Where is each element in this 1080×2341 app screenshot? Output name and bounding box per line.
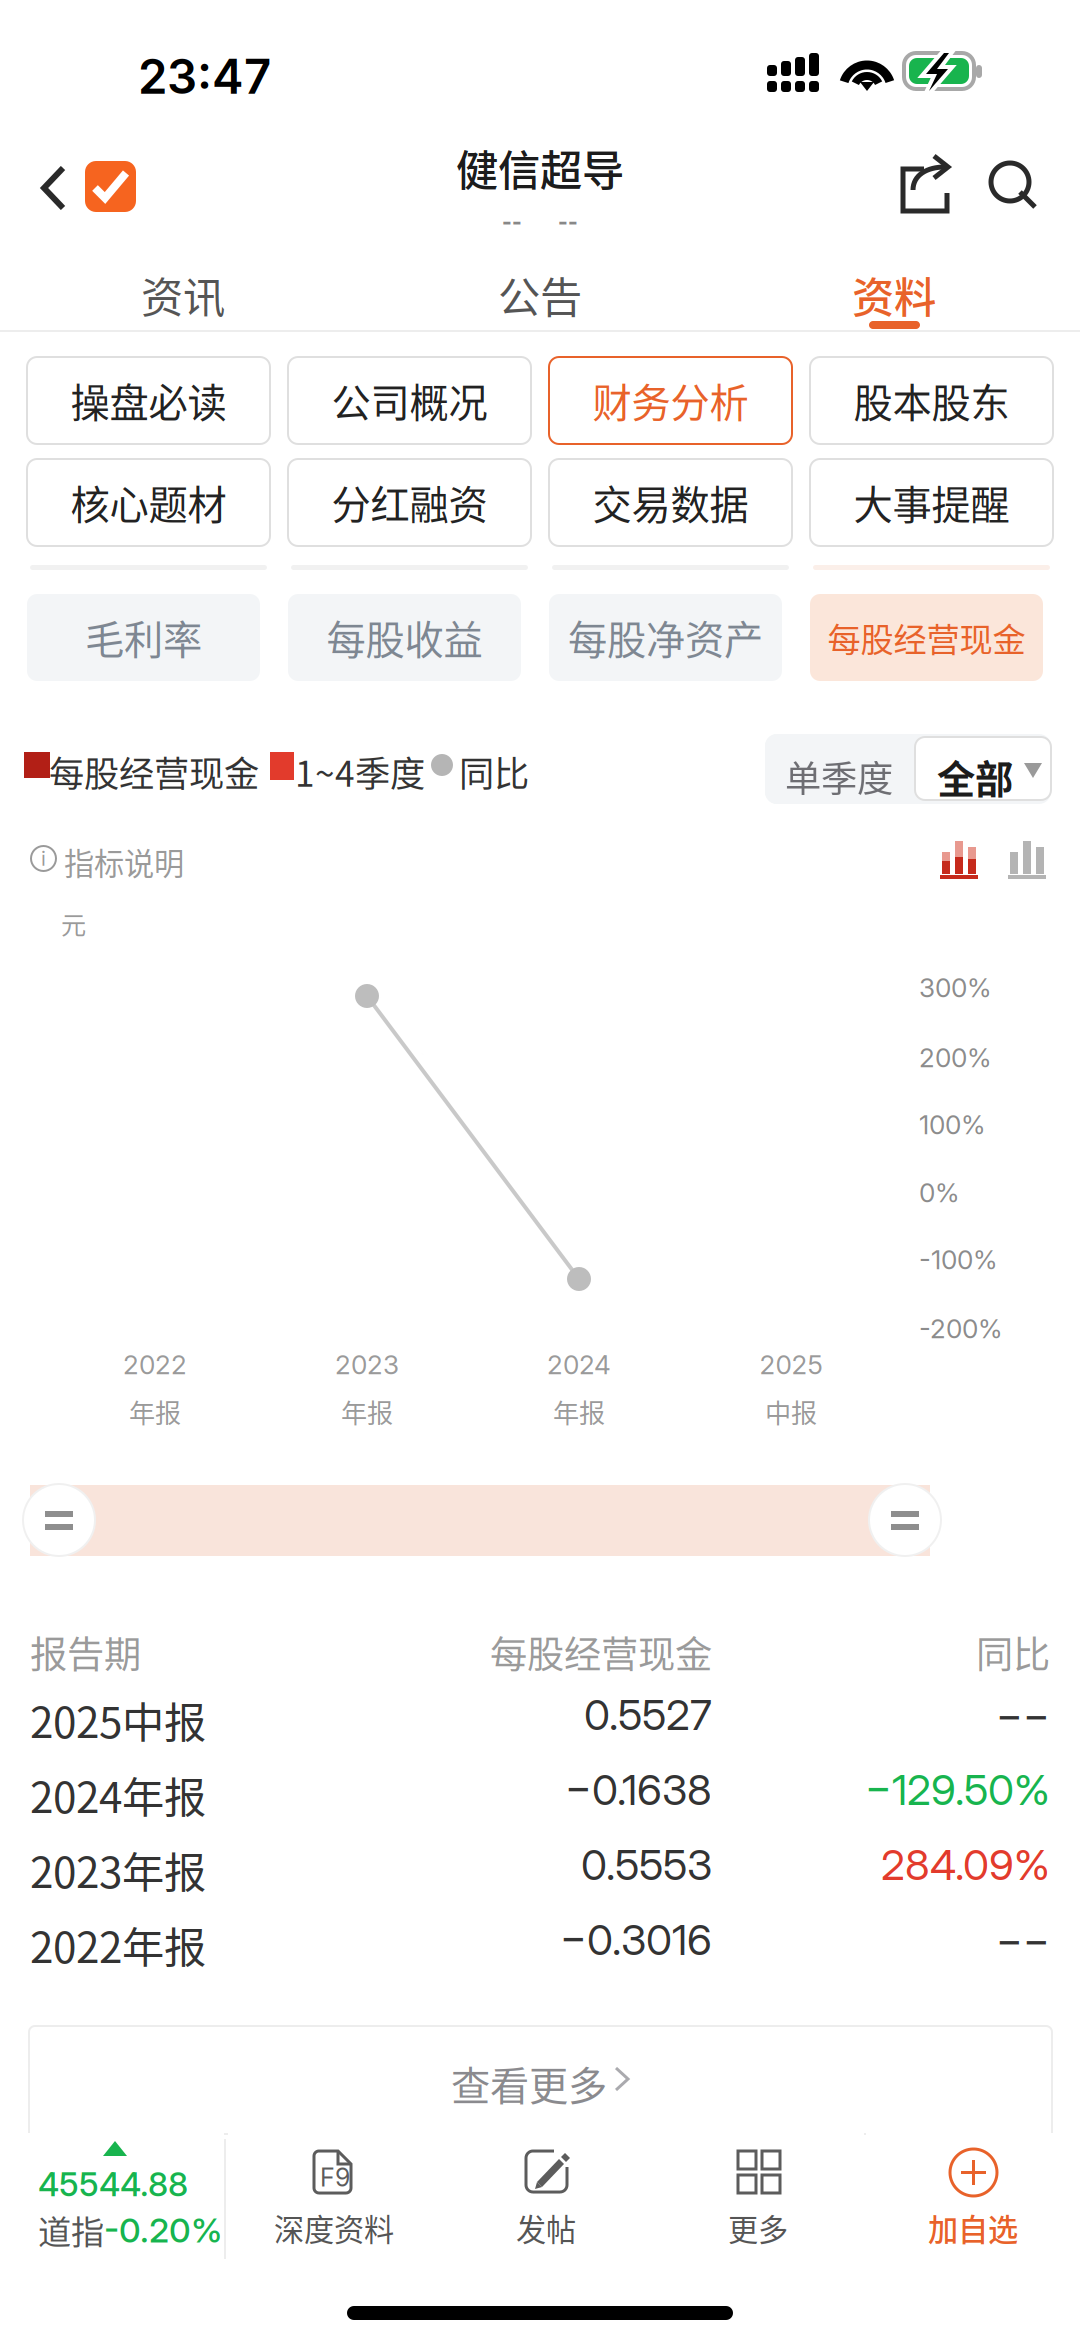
staticText: 200% bbox=[919, 1042, 992, 1074]
button[interactable]: 每股经营现金 bbox=[810, 594, 1043, 681]
button[interactable]: 财务分析 bbox=[549, 357, 792, 444]
staticText: 每股净资产 bbox=[568, 609, 763, 666]
button[interactable]: 资料 bbox=[714, 248, 1074, 330]
staticText: 深度资料 bbox=[274, 2206, 394, 2250]
staticText: 同比 bbox=[459, 746, 529, 797]
staticText: 0.5527 bbox=[584, 1689, 712, 1740]
button[interactable]: 公司概况 bbox=[288, 357, 531, 444]
button[interactable]: Search bbox=[980, 150, 1054, 224]
staticText: 分红融资 bbox=[331, 474, 487, 531]
staticText: 更多 bbox=[728, 2206, 788, 2250]
staticText: 公司概况 bbox=[331, 372, 487, 429]
staticText: -200% bbox=[919, 1313, 1003, 1345]
staticText: 公告 bbox=[498, 264, 582, 325]
staticText: 毛利率 bbox=[85, 609, 202, 666]
button[interactable]: 核心题材 bbox=[27, 459, 270, 546]
staticText: −129.50% bbox=[865, 1764, 1050, 1815]
staticText: 资料 bbox=[852, 264, 936, 325]
staticText: 0% bbox=[919, 1177, 960, 1209]
staticText: 健信超导 bbox=[456, 137, 624, 198]
staticText: 操盘必读 bbox=[70, 372, 226, 429]
staticText: 年报 bbox=[341, 1393, 393, 1431]
button[interactable]: 大事提醒 bbox=[810, 459, 1053, 546]
staticText: 2024 bbox=[547, 1349, 611, 1381]
staticText: -0.20% bbox=[104, 2209, 222, 2251]
staticText: 2023年报 bbox=[30, 1839, 206, 1900]
staticText: 全部 bbox=[937, 749, 1013, 804]
staticText: −0.3016 bbox=[560, 1914, 712, 1965]
button[interactable]: Share bbox=[890, 150, 964, 224]
staticText: 年报 bbox=[553, 1393, 605, 1431]
button[interactable]: 毛利率 bbox=[27, 594, 260, 681]
staticText: 2022年报 bbox=[30, 1914, 206, 1975]
button[interactable]: Column chart bbox=[1008, 836, 1046, 880]
staticText: −0.1638 bbox=[565, 1764, 712, 1815]
staticText: 2022 bbox=[123, 1349, 187, 1381]
staticText: 交易数据 bbox=[592, 474, 748, 531]
button[interactable]: 资讯 bbox=[3, 248, 363, 330]
button[interactable]: 交易数据 bbox=[549, 459, 792, 546]
staticText: 单季度 bbox=[785, 750, 893, 802]
staticText: −− bbox=[996, 1914, 1050, 1965]
staticText: −− bbox=[996, 1689, 1050, 1740]
staticText: 2025中报 bbox=[30, 1689, 206, 1750]
button[interactable]: 查看更多 bbox=[29, 2026, 1052, 2206]
button[interactable]: 全部 bbox=[915, 737, 1051, 800]
staticText: 资讯 bbox=[141, 264, 225, 325]
staticText: 每股经营现金 bbox=[490, 1625, 712, 1679]
staticText: 2024年报 bbox=[30, 1764, 206, 1825]
staticText: 查看更多 bbox=[451, 2055, 607, 2112]
staticText: 每股经营现金 bbox=[49, 746, 259, 797]
staticText: 284.09% bbox=[881, 1839, 1050, 1890]
staticText: F9 bbox=[320, 2162, 350, 2192]
button[interactable]: F9 bbox=[228, 2133, 440, 2271]
button[interactable]: 分红融资 bbox=[288, 459, 531, 546]
staticText: 300% bbox=[919, 972, 992, 1004]
staticText: 1~4季度 bbox=[295, 746, 425, 797]
button[interactable]: 45544.88 bbox=[0, 2133, 224, 2271]
staticText: 报告期 bbox=[30, 1625, 141, 1679]
staticText: 元 bbox=[61, 905, 86, 941]
staticText: 指标说明 bbox=[64, 840, 184, 884]
button[interactable]: 更多 bbox=[652, 2133, 864, 2271]
staticText: i bbox=[41, 846, 46, 871]
staticText: 大事提醒 bbox=[853, 474, 1009, 531]
staticText: 中报 bbox=[765, 1393, 817, 1431]
button[interactable]: 操盘必读 bbox=[27, 357, 270, 444]
staticText: 23:47 bbox=[138, 48, 271, 105]
staticText: 道指 bbox=[38, 2206, 104, 2254]
staticText: -100% bbox=[919, 1244, 998, 1276]
staticText: 股本股东 bbox=[853, 372, 1009, 429]
button[interactable]: 每股收益 bbox=[288, 594, 521, 681]
staticText: 加自选 bbox=[928, 2206, 1018, 2250]
staticText: 100% bbox=[919, 1109, 986, 1141]
button[interactable]: 单季度 bbox=[765, 734, 915, 804]
staticText: 0.5553 bbox=[581, 1839, 712, 1890]
staticText: 同比 bbox=[976, 1625, 1050, 1679]
button[interactable]: i bbox=[26, 838, 266, 884]
button[interactable]: 每股净资产 bbox=[549, 594, 782, 681]
staticText: 2023 bbox=[335, 1349, 399, 1381]
staticText: 每股收益 bbox=[326, 609, 482, 666]
button[interactable]: 发帖 bbox=[440, 2133, 652, 2271]
staticText: 每股经营现金 bbox=[827, 613, 1025, 661]
staticText: 2025 bbox=[759, 1349, 822, 1381]
staticText: 核心题材 bbox=[70, 474, 226, 531]
staticText: 年报 bbox=[129, 1393, 181, 1431]
staticText: 财务分析 bbox=[592, 372, 748, 429]
staticText: 发帖 bbox=[516, 2206, 576, 2250]
staticText: -- -- bbox=[502, 200, 578, 238]
button[interactable]: 公告 bbox=[360, 248, 720, 330]
button[interactable]: Back bbox=[0, 130, 150, 230]
button[interactable]: Bar chart bbox=[940, 836, 978, 880]
button[interactable]: 加自选 bbox=[866, 2133, 1080, 2271]
staticText: 45544.88 bbox=[38, 2164, 188, 2204]
button[interactable]: 股本股东 bbox=[810, 357, 1053, 444]
